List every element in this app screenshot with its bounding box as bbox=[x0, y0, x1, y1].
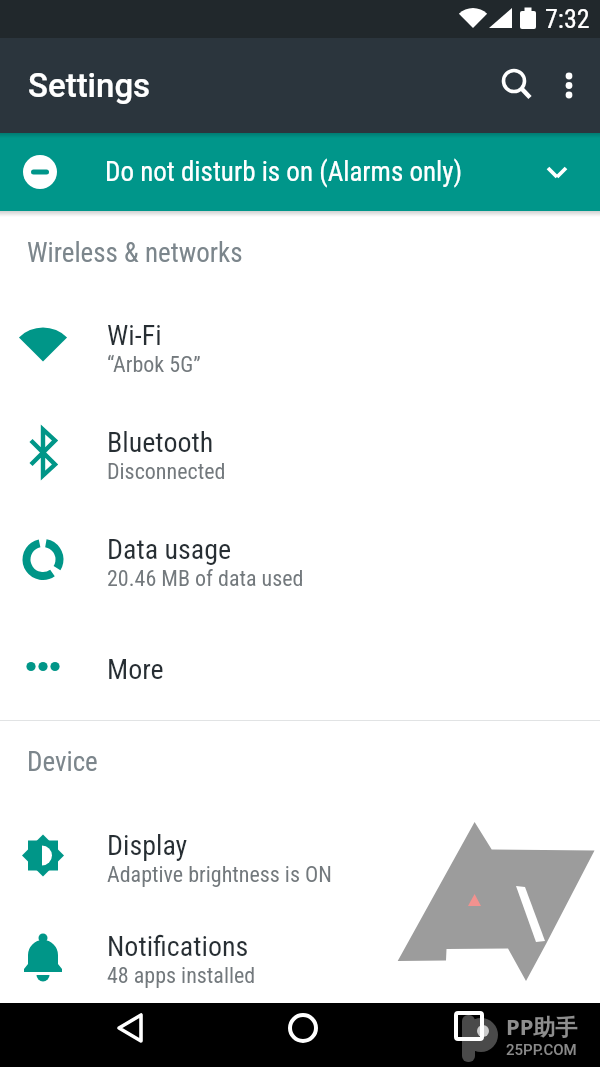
staticText: Device bbox=[27, 746, 98, 778]
staticText: Notifications bbox=[107, 930, 249, 963]
staticText: Wi-Fi bbox=[107, 319, 162, 352]
button[interactable]: Display bbox=[0, 802, 600, 909]
staticText: Display bbox=[107, 829, 188, 862]
button[interactable] bbox=[440, 1008, 494, 1062]
button[interactable]: More bbox=[0, 613, 600, 720]
staticText: Do not disturb is on (Alarms only) bbox=[105, 156, 463, 188]
button[interactable]: Notifications bbox=[0, 909, 600, 1003]
staticText: Bluetooth bbox=[107, 426, 214, 459]
button[interactable]: Wi-Fi bbox=[0, 292, 600, 399]
staticText: 20.46 MB of data used bbox=[107, 566, 304, 592]
staticText: 7:32 bbox=[545, 4, 590, 34]
button[interactable] bbox=[556, 38, 600, 133]
staticText: 25PP.COM bbox=[506, 1041, 577, 1059]
button[interactable] bbox=[494, 62, 542, 110]
staticText: Disconnected bbox=[107, 459, 226, 485]
staticText: Settings bbox=[28, 66, 151, 105]
staticText: “Arbok 5G” bbox=[107, 352, 201, 378]
button[interactable] bbox=[276, 1001, 330, 1055]
staticText: Adaptive brightness is ON bbox=[107, 862, 332, 888]
staticText: Wireless & networks bbox=[27, 237, 243, 269]
button[interactable]: Bluetooth bbox=[0, 399, 600, 506]
staticText: More bbox=[107, 653, 164, 686]
staticText: Data usage bbox=[107, 533, 232, 566]
staticText: 48 apps installed bbox=[107, 963, 256, 989]
staticText: PP助手 bbox=[506, 1011, 578, 1041]
button[interactable]: Do not disturb is on (Alarms only) bbox=[0, 133, 600, 211]
button[interactable]: Data usage bbox=[0, 506, 600, 613]
button[interactable] bbox=[104, 1008, 158, 1062]
